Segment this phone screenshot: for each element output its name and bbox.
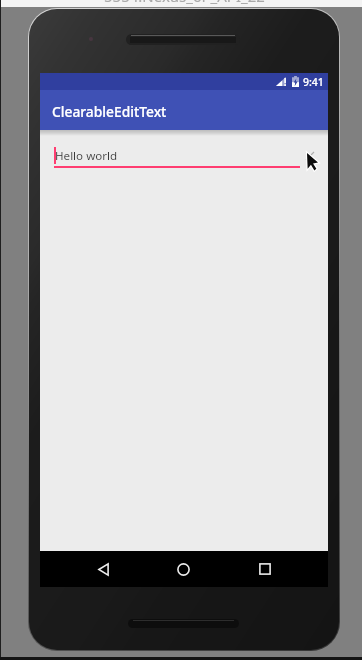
button[interactable]: Back bbox=[81, 551, 125, 587]
button[interactable]: Recents bbox=[243, 551, 287, 587]
staticText: ClearableEditText bbox=[52, 102, 167, 121]
staticText: Hello world bbox=[55, 148, 118, 164]
button[interactable]: Hello world bbox=[54, 143, 300, 173]
button[interactable]: ClearableEditText bbox=[40, 90, 328, 130]
button[interactable]: Home bbox=[161, 551, 205, 587]
button[interactable]: Clear text bbox=[299, 145, 321, 167]
staticText: 9:41 bbox=[303, 75, 324, 89]
staticText: 5554:Nexus_6P_API_22 bbox=[104, 0, 265, 6]
